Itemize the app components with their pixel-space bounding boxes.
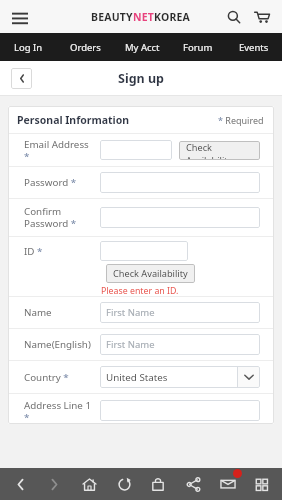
staticText: BEAUTYNETKOREA bbox=[91, 10, 191, 24]
staticText: Check Availability bbox=[113, 267, 188, 280]
staticText: United States bbox=[106, 371, 168, 384]
staticText: Log In bbox=[14, 41, 43, 54]
button[interactable] bbox=[100, 207, 260, 228]
button[interactable]: First Name bbox=[100, 302, 260, 323]
button[interactable]: Search bbox=[222, 5, 246, 29]
button[interactable] bbox=[100, 241, 188, 261]
staticText: Country * bbox=[24, 371, 69, 384]
staticText: Forum bbox=[183, 41, 213, 54]
staticText: First Name bbox=[106, 306, 155, 319]
button[interactable]: Log In bbox=[0, 33, 57, 61]
staticText: Sign up bbox=[118, 70, 164, 87]
staticText: Password * bbox=[24, 176, 77, 189]
button[interactable]: Share bbox=[178, 468, 208, 500]
button[interactable]: Forward bbox=[39, 468, 69, 500]
button[interactable]: Reload bbox=[109, 468, 139, 500]
staticText: ID * bbox=[24, 245, 43, 258]
staticText: Personal Information bbox=[17, 113, 130, 127]
button[interactable]: Orders bbox=[57, 33, 114, 61]
button[interactable]: Back bbox=[5, 468, 35, 500]
staticText: Orders bbox=[70, 41, 101, 54]
button[interactable]: First Name bbox=[100, 334, 260, 355]
staticText: My Acct bbox=[125, 41, 160, 54]
staticText: Please enter an ID. bbox=[101, 285, 179, 296]
staticText: Name bbox=[24, 306, 52, 319]
button[interactable]: Home bbox=[74, 468, 104, 500]
staticText: Confirm Password * bbox=[24, 205, 96, 230]
staticText: Check Availability bbox=[186, 141, 253, 160]
staticText: Address Line 1 * bbox=[24, 399, 96, 424]
staticText: Name(English) bbox=[24, 338, 91, 351]
button[interactable]: My Acct bbox=[114, 33, 170, 61]
button[interactable]: Menu bbox=[8, 5, 32, 29]
button[interactable]: Shop bbox=[143, 468, 173, 500]
button[interactable]: Messages bbox=[213, 468, 243, 500]
button[interactable]: Back bbox=[11, 68, 32, 89]
button[interactable]: Forum bbox=[170, 33, 226, 61]
button[interactable]: Country selector bbox=[100, 366, 260, 388]
staticText: Email Address * bbox=[24, 138, 96, 163]
staticText: * Required bbox=[218, 114, 264, 126]
button[interactable]: Check Availability bbox=[106, 264, 195, 283]
button[interactable] bbox=[100, 172, 260, 193]
button[interactable]: Events bbox=[226, 33, 282, 61]
staticText: Events bbox=[239, 41, 269, 54]
button[interactable]: Cart bbox=[250, 5, 274, 29]
button[interactable] bbox=[100, 140, 172, 160]
button[interactable]: Tabs bbox=[247, 468, 277, 500]
button[interactable]: Check Availability bbox=[179, 141, 260, 160]
button[interactable] bbox=[100, 400, 260, 421]
staticText: First Name bbox=[106, 338, 155, 351]
